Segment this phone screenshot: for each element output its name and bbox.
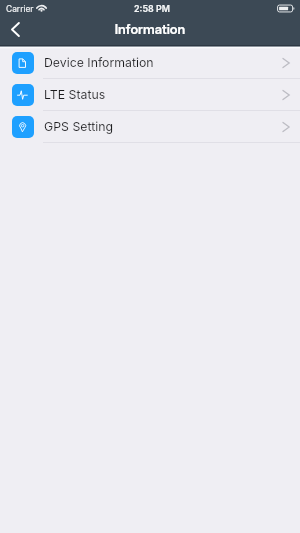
staticText: Device Information <box>44 55 154 70</box>
button[interactable]: LTE Status <box>0 79 300 111</box>
staticText: LTE Status <box>44 87 106 102</box>
staticText: GPS Setting <box>44 119 113 134</box>
staticText: Information <box>0 21 300 37</box>
button[interactable]: Device Information <box>0 47 300 79</box>
button[interactable]: GPS Setting <box>0 111 300 143</box>
staticText: Carrier <box>6 4 34 14</box>
staticText: 2:58 PM <box>2 3 300 14</box>
button[interactable]: Back <box>0 16 40 45</box>
